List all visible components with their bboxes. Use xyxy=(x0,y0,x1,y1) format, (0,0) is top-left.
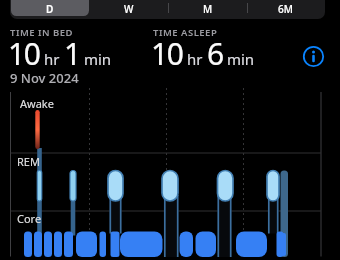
staticText: D xyxy=(46,2,54,16)
staticText: min xyxy=(80,49,112,69)
button[interactable]: M xyxy=(168,0,247,17)
button[interactable]: D xyxy=(10,0,89,17)
button[interactable]: 6M xyxy=(246,0,325,17)
staticText: hr xyxy=(183,49,207,69)
button[interactable] xyxy=(302,45,325,68)
button[interactable]: W xyxy=(89,0,168,17)
staticText: W xyxy=(124,2,134,16)
staticText: TIME ASLEEP xyxy=(153,26,218,39)
staticText: 9 Nov 2024 xyxy=(10,69,79,87)
staticText: 10 xyxy=(8,33,40,74)
staticText: 6M xyxy=(278,2,293,16)
staticText: Awake xyxy=(20,96,54,111)
staticText: TIME IN BED xyxy=(10,26,74,39)
staticText: min xyxy=(223,49,255,69)
staticText: 10 xyxy=(151,33,183,74)
staticText: M xyxy=(203,2,213,16)
staticText: 1 xyxy=(64,33,80,74)
staticText: REM xyxy=(17,154,40,169)
staticText: hr xyxy=(40,49,64,69)
staticText: Core xyxy=(17,211,42,226)
staticText: 6 xyxy=(207,33,223,74)
